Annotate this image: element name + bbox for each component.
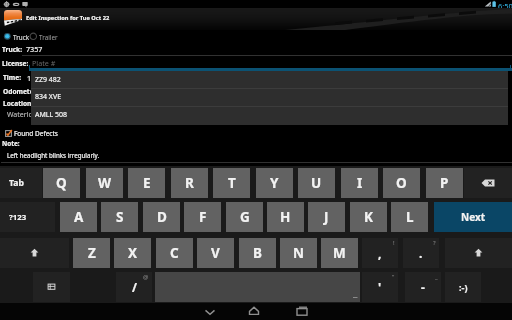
- button[interactable]: S: [101, 202, 138, 232]
- staticText: A: [74, 208, 84, 226]
- staticText: Truck: [13, 33, 30, 42]
- button[interactable]: Tab: [0, 168, 42, 198]
- button[interactable]: R: [171, 168, 208, 198]
- button[interactable]: Home: [240, 303, 268, 320]
- button[interactable]: D: [143, 202, 180, 232]
- staticText: Y: [270, 174, 279, 192]
- staticText: ?: [433, 239, 436, 247]
- button[interactable]: P: [426, 168, 463, 198]
- staticText: P: [440, 174, 449, 192]
- staticText: _: [435, 273, 438, 281]
- staticText: Found Defects: [14, 129, 58, 138]
- button[interactable]: Hide keyboard: [196, 303, 224, 320]
- staticText: Trailer: [39, 33, 58, 42]
- button[interactable]: W: [86, 168, 123, 198]
- staticText: ?123: [9, 212, 27, 223]
- button[interactable]: ': [362, 272, 398, 302]
- staticText: Odometer: [3, 87, 37, 96]
- button[interactable]: 834 XVE: [31, 88, 508, 105]
- button[interactable]: E: [128, 168, 165, 198]
- button[interactable]: Next: [434, 202, 512, 232]
- staticText: L: [406, 208, 414, 226]
- button[interactable]: :-): [445, 272, 481, 302]
- button[interactable]: ZZ9 482: [31, 71, 508, 88]
- staticText: :-): [459, 281, 468, 293]
- staticText: X: [128, 244, 138, 262]
- staticText: Location:: [3, 99, 34, 108]
- staticText: 834 XVE: [35, 92, 62, 102]
- staticText: S: [116, 208, 124, 226]
- button[interactable]: Change language: [33, 272, 70, 302]
- staticText: Truck:: [2, 45, 23, 54]
- staticText: /: [132, 279, 137, 295]
- staticText: ,: [378, 245, 382, 261]
- staticText: D: [157, 208, 167, 226]
- staticText: @: [143, 273, 149, 281]
- button[interactable]: J: [308, 202, 345, 232]
- button[interactable]: G: [226, 202, 263, 232]
- button[interactable]: Y: [256, 168, 293, 198]
- staticText: N: [293, 244, 304, 262]
- button[interactable]: Found Defects: [5, 129, 58, 138]
- button[interactable]: A: [60, 202, 97, 232]
- staticText: K: [364, 208, 373, 226]
- staticText: -: [421, 279, 425, 295]
- button[interactable]: K: [350, 202, 387, 232]
- staticText: R: [185, 174, 194, 192]
- staticText: U: [311, 174, 322, 192]
- button[interactable]: /: [116, 272, 152, 302]
- button[interactable]: Shift: [0, 238, 69, 268]
- staticText: 1: [27, 73, 32, 83]
- staticText: W: [98, 174, 112, 192]
- button[interactable]: U: [298, 168, 335, 198]
- staticText: License:: [2, 59, 29, 68]
- staticText: Left headlight blinks irregularly.: [7, 151, 100, 159]
- button[interactable]: ?123: [0, 202, 55, 232]
- button[interactable]: N: [280, 238, 317, 268]
- staticText: I: [357, 174, 363, 192]
- button[interactable]: I: [341, 168, 378, 198]
- button[interactable]: Backspace: [464, 168, 512, 198]
- button[interactable]: B: [239, 238, 276, 268]
- staticText: O: [396, 174, 407, 192]
- button[interactable]: Recent apps: [288, 303, 316, 320]
- staticText: M: [333, 244, 346, 262]
- staticText: Q: [56, 174, 67, 192]
- staticText: Time:: [3, 73, 21, 82]
- button[interactable]: Shift: [445, 238, 512, 268]
- button[interactable]: O: [383, 168, 420, 198]
- staticText: Tab: [9, 177, 24, 189]
- button[interactable]: App icon, navigate up: [4, 10, 22, 26]
- button[interactable]: T: [213, 168, 250, 198]
- button[interactable]: Z: [73, 238, 110, 268]
- button[interactable]: V: [197, 238, 234, 268]
- button[interactable]: F: [184, 202, 221, 232]
- button[interactable]: ,: [362, 238, 398, 268]
- button[interactable]: H: [267, 202, 304, 232]
- button[interactable]: Q: [43, 168, 80, 198]
- staticText: Note:: [2, 139, 20, 148]
- staticText: Plate #: [32, 58, 56, 68]
- button[interactable]: AMLL 508: [31, 106, 508, 124]
- button[interactable]: M: [321, 238, 358, 268]
- button[interactable]: Truck: [1, 30, 29, 43]
- button[interactable]: C: [156, 238, 193, 268]
- staticText: Waterloo: [7, 110, 37, 120]
- staticText: H: [280, 208, 291, 226]
- staticText: E: [143, 174, 151, 192]
- button[interactable]: .: [403, 238, 439, 268]
- button[interactable]: Trailer: [29, 30, 59, 43]
- staticText: C: [170, 244, 179, 262]
- staticText: G: [240, 208, 250, 226]
- staticText: J: [324, 208, 329, 226]
- button[interactable]: L: [391, 202, 428, 232]
- staticText: B: [253, 244, 262, 262]
- staticText: ": [392, 273, 395, 281]
- staticText: ': [378, 279, 382, 295]
- button[interactable]: -: [405, 272, 441, 302]
- staticText: .: [419, 245, 423, 261]
- staticText: T: [228, 174, 236, 192]
- staticText: Next: [461, 210, 486, 224]
- button[interactable]: X: [114, 238, 151, 268]
